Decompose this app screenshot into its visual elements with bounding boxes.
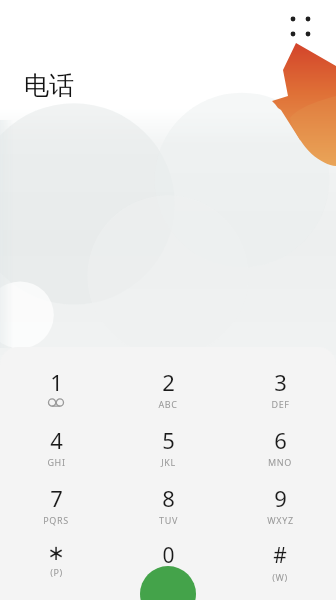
staticText: 7 (50, 483, 63, 513)
staticText: 2 (162, 367, 175, 397)
button[interactable]: 9 (224, 483, 336, 526)
staticText: 6 (274, 425, 287, 455)
staticText: (W) (272, 571, 288, 583)
staticText: ∗ (47, 541, 65, 565)
staticText: 5 (162, 425, 175, 455)
staticText: MNO (268, 456, 292, 468)
staticText: 4 (50, 425, 63, 455)
staticText: # (273, 541, 287, 570)
button[interactable]: 4 (0, 425, 112, 468)
button[interactable]: 2 (112, 367, 224, 410)
staticText: JKL (161, 456, 176, 468)
staticText: PQRS (43, 514, 69, 526)
staticText: 电话 (24, 70, 74, 101)
button[interactable]: 7 (0, 483, 112, 526)
staticText: GHI (47, 456, 66, 468)
staticText: TUV (159, 514, 178, 526)
staticText: 3 (274, 367, 287, 397)
button[interactable]: ∗ (0, 541, 112, 578)
staticText: 9 (274, 483, 287, 513)
button[interactable]: Call (140, 566, 196, 600)
button[interactable]: 6 (224, 425, 336, 468)
staticText: WXYZ (267, 514, 294, 526)
staticText: (P) (50, 566, 63, 578)
staticText: 8 (162, 483, 175, 513)
staticText: ABC (158, 398, 178, 410)
button[interactable]: # (224, 541, 336, 583)
staticText: 0 (162, 541, 175, 570)
staticText: DEF (271, 398, 290, 410)
button[interactable]: 5 (112, 425, 224, 468)
button[interactable]: 8 (112, 483, 224, 526)
button[interactable]: 0 (112, 541, 224, 587)
staticText: 1 (50, 367, 63, 397)
button[interactable]: 3 (224, 367, 336, 410)
button[interactable]: More options (286, 12, 322, 48)
button[interactable]: 1 (0, 367, 112, 407)
